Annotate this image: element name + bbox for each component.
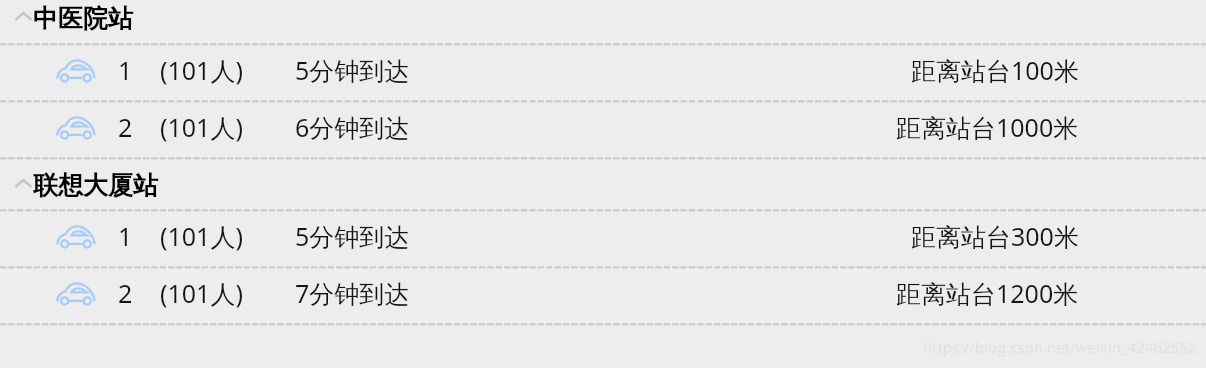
staticText: (101人) [160, 110, 243, 144]
other: Bus [56, 59, 96, 83]
button[interactable]: Collapse [0, 0, 1206, 43]
other: Collapse [15, 10, 32, 22]
button[interactable]: Bus [0, 212, 1206, 266]
button[interactable]: Bus [0, 269, 1206, 323]
staticText: 1 [118, 219, 133, 253]
staticText: 6分钟到达 [295, 110, 410, 144]
button[interactable]: Bus [0, 103, 1206, 157]
staticText: https://blog.csdn.net/weixin_42462552 [923, 337, 1197, 357]
staticText: 7分钟到达 [295, 276, 410, 310]
staticText: 中医院站 [33, 3, 133, 34]
staticText: (101人) [160, 276, 243, 310]
button[interactable]: Bus [0, 46, 1206, 100]
staticText: 距离站台100米 [911, 53, 1079, 87]
other: Collapse [15, 177, 32, 189]
button[interactable]: Collapse [0, 160, 1206, 209]
other: Bus [56, 225, 96, 249]
staticText: 1 [118, 53, 133, 87]
staticText: 距离站台1000米 [896, 110, 1079, 144]
staticText: 5分钟到达 [295, 53, 410, 87]
staticText: 距离站台300米 [911, 219, 1079, 253]
staticText: 2 [118, 276, 133, 310]
staticText: (101人) [160, 219, 243, 253]
staticText: 2 [118, 110, 133, 144]
staticText: 距离站台1200米 [896, 276, 1079, 310]
staticText: (101人) [160, 53, 243, 87]
staticText: 联想大厦站 [33, 170, 158, 201]
staticText: 5分钟到达 [295, 219, 410, 253]
other: Bus [56, 116, 96, 140]
other: Bus [56, 282, 96, 306]
